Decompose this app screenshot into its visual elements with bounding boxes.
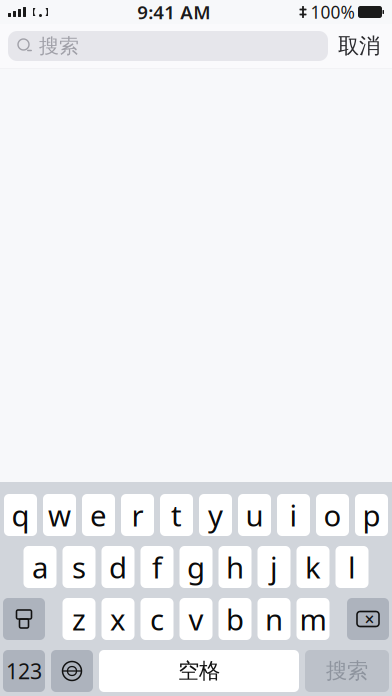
staticText: 搜索 bbox=[326, 658, 368, 684]
button[interactable]: r bbox=[121, 494, 154, 536]
button[interactable]: b bbox=[218, 598, 251, 640]
button[interactable]: Switch keyboard bbox=[51, 650, 93, 692]
button[interactable]: j bbox=[257, 546, 290, 588]
button[interactable]: o bbox=[316, 494, 349, 536]
button[interactable]: f bbox=[140, 546, 173, 588]
staticText: h bbox=[226, 547, 244, 586]
button[interactable]: l bbox=[335, 546, 368, 588]
staticText: c bbox=[150, 599, 164, 638]
button[interactable]: c bbox=[140, 598, 173, 640]
staticText: 100% bbox=[310, 0, 354, 23]
staticText: × bbox=[364, 607, 374, 630]
staticText: b bbox=[226, 599, 244, 638]
staticText: y bbox=[208, 495, 223, 534]
button[interactable]: e bbox=[82, 494, 115, 536]
staticText: 123 bbox=[6, 657, 42, 685]
staticText: e bbox=[90, 495, 107, 534]
button[interactable]: 空格 bbox=[99, 650, 299, 692]
button[interactable]: s bbox=[62, 546, 95, 588]
staticText: n bbox=[265, 599, 283, 638]
button[interactable]: n bbox=[257, 598, 290, 640]
staticText: f bbox=[152, 547, 162, 586]
staticText: 搜索 bbox=[39, 34, 79, 58]
button[interactable]: 取消 bbox=[328, 28, 390, 64]
button[interactable]: u bbox=[238, 494, 271, 536]
button[interactable]: 搜索 bbox=[305, 650, 389, 692]
staticText: z bbox=[72, 599, 86, 638]
button[interactable]: Delete bbox=[347, 598, 389, 640]
staticText: m bbox=[299, 599, 326, 638]
staticText: d bbox=[109, 547, 127, 586]
button[interactable]: w bbox=[43, 494, 76, 536]
staticText: t bbox=[171, 495, 182, 534]
button[interactable]: Shift bbox=[3, 598, 45, 640]
staticText: x bbox=[110, 599, 126, 638]
staticText: j bbox=[270, 547, 278, 586]
staticText: 空格 bbox=[178, 658, 220, 684]
staticText: a bbox=[32, 547, 48, 586]
staticText: l bbox=[348, 547, 356, 586]
button[interactable]: m bbox=[296, 598, 329, 640]
button[interactable]: a bbox=[23, 546, 56, 588]
button[interactable]: q bbox=[4, 494, 37, 536]
button[interactable]: h bbox=[218, 546, 251, 588]
button[interactable]: i bbox=[277, 494, 310, 536]
button[interactable]: k bbox=[296, 546, 329, 588]
staticText: p bbox=[362, 495, 380, 534]
staticText: 取消 bbox=[338, 33, 380, 59]
button[interactable]: 123 bbox=[3, 650, 45, 692]
button[interactable]: z bbox=[62, 598, 95, 640]
button[interactable]: y bbox=[199, 494, 232, 536]
button[interactable]: g bbox=[179, 546, 212, 588]
button[interactable]: d bbox=[101, 546, 134, 588]
staticText: v bbox=[188, 599, 203, 638]
staticText: s bbox=[72, 547, 86, 586]
staticText: u bbox=[245, 495, 263, 534]
staticText: o bbox=[323, 495, 341, 534]
staticText: k bbox=[305, 547, 321, 586]
staticText: w bbox=[48, 495, 71, 534]
button[interactable]: v bbox=[179, 598, 212, 640]
button[interactable]: p bbox=[355, 494, 388, 536]
staticText: r bbox=[131, 495, 143, 534]
staticText: 9:41 AM bbox=[137, 0, 210, 24]
staticText: g bbox=[187, 547, 205, 586]
staticText: i bbox=[289, 495, 297, 534]
staticText: q bbox=[11, 495, 29, 534]
button[interactable]: t bbox=[160, 494, 193, 536]
button[interactable]: x bbox=[101, 598, 134, 640]
